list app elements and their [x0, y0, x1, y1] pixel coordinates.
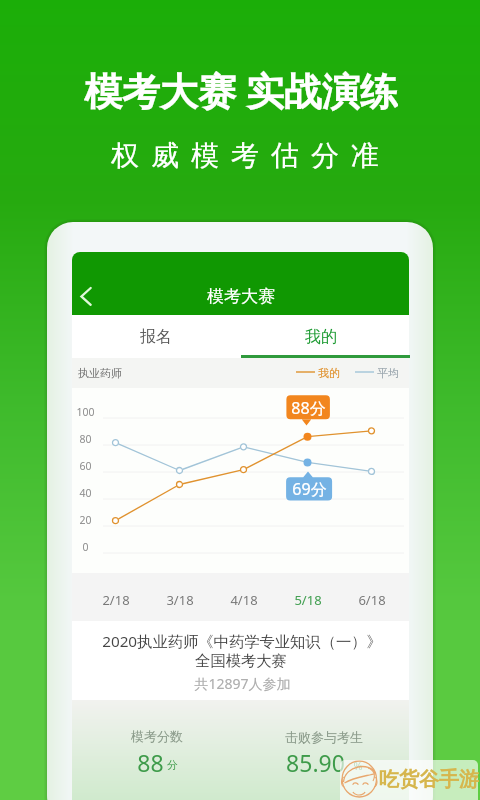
- staticText: 69分: [292, 478, 327, 500]
- staticText: 20: [79, 513, 92, 527]
- staticText: %: [353, 758, 363, 773]
- staticText: 吃货谷手游: [379, 767, 479, 792]
- staticText: 0: [82, 540, 89, 554]
- button[interactable]: 击败参与考生: [241, 700, 410, 800]
- button[interactable]: 我的: [241, 315, 410, 358]
- staticText: 模考分数: [131, 728, 183, 744]
- staticText: 模考大赛: [207, 286, 275, 307]
- staticText: 平均: [377, 366, 399, 380]
- staticText: 3/18: [166, 591, 194, 609]
- staticText: 88: [137, 747, 164, 778]
- staticText: 我的: [305, 327, 337, 347]
- staticText: 80: [79, 432, 92, 446]
- staticText: 2/18: [102, 591, 130, 609]
- staticText: 我的: [318, 366, 340, 380]
- staticText: 击败参与考生: [285, 729, 363, 745]
- staticText: 报名: [140, 327, 172, 347]
- staticText: 权威模考估分准: [105, 138, 385, 173]
- button[interactable]: Back: [75, 279, 113, 317]
- staticText: 共12897人参加: [194, 674, 291, 693]
- staticText: 40: [79, 486, 92, 500]
- staticText: 5/18: [294, 591, 322, 609]
- button[interactable]: 模考分数: [72, 700, 241, 800]
- staticText: 60: [79, 459, 92, 473]
- staticText: 4/18: [230, 591, 258, 609]
- staticText: 100: [76, 405, 95, 419]
- staticText: 执业药师: [78, 366, 122, 380]
- staticText: 85.90: [286, 747, 345, 778]
- staticText: 6/18: [358, 591, 386, 609]
- staticText: 88分: [291, 397, 326, 419]
- button[interactable]: 报名: [72, 315, 241, 358]
- staticText: 全国模考大赛: [195, 651, 287, 670]
- staticText: 2020执业药师《中药学专业知识（一）》: [102, 631, 382, 652]
- staticText: 模考大赛 实战演练: [84, 64, 398, 112]
- staticText: 分: [167, 758, 178, 772]
